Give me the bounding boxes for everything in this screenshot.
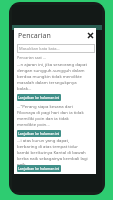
staticText: Pencarian — [18, 31, 51, 41]
button[interactable]: Lanjutkan ke halaman ini — [17, 165, 61, 172]
button[interactable]: Lanjutkan ke halaman ini — [17, 94, 61, 101]
staticText: Masukkan kata kata... — [19, 46, 60, 51]
button[interactable]: Lanjutkan ke halaman ini — [17, 130, 61, 137]
staticText: Lanjutkan ke halaman ini — [18, 95, 60, 100]
button[interactable]: Masukkan kata kata... — [17, 44, 95, 53]
button[interactable]: Tutup — [85, 30, 95, 40]
staticText: ...i atas kurun yang dapat, berbaring di… — [17, 137, 89, 167]
staticText: ...n ajaran ini, jika seseorang dapat de… — [17, 61, 89, 91]
staticText: Pencarian saat ... — [17, 55, 46, 60]
staticText: Lanjutkan ke halaman ini — [18, 131, 60, 136]
staticText: ..."Perang siapa kesana dari Fibonaya di… — [17, 103, 89, 127]
staticText: Lanjutkan ke halaman ini — [18, 166, 60, 171]
